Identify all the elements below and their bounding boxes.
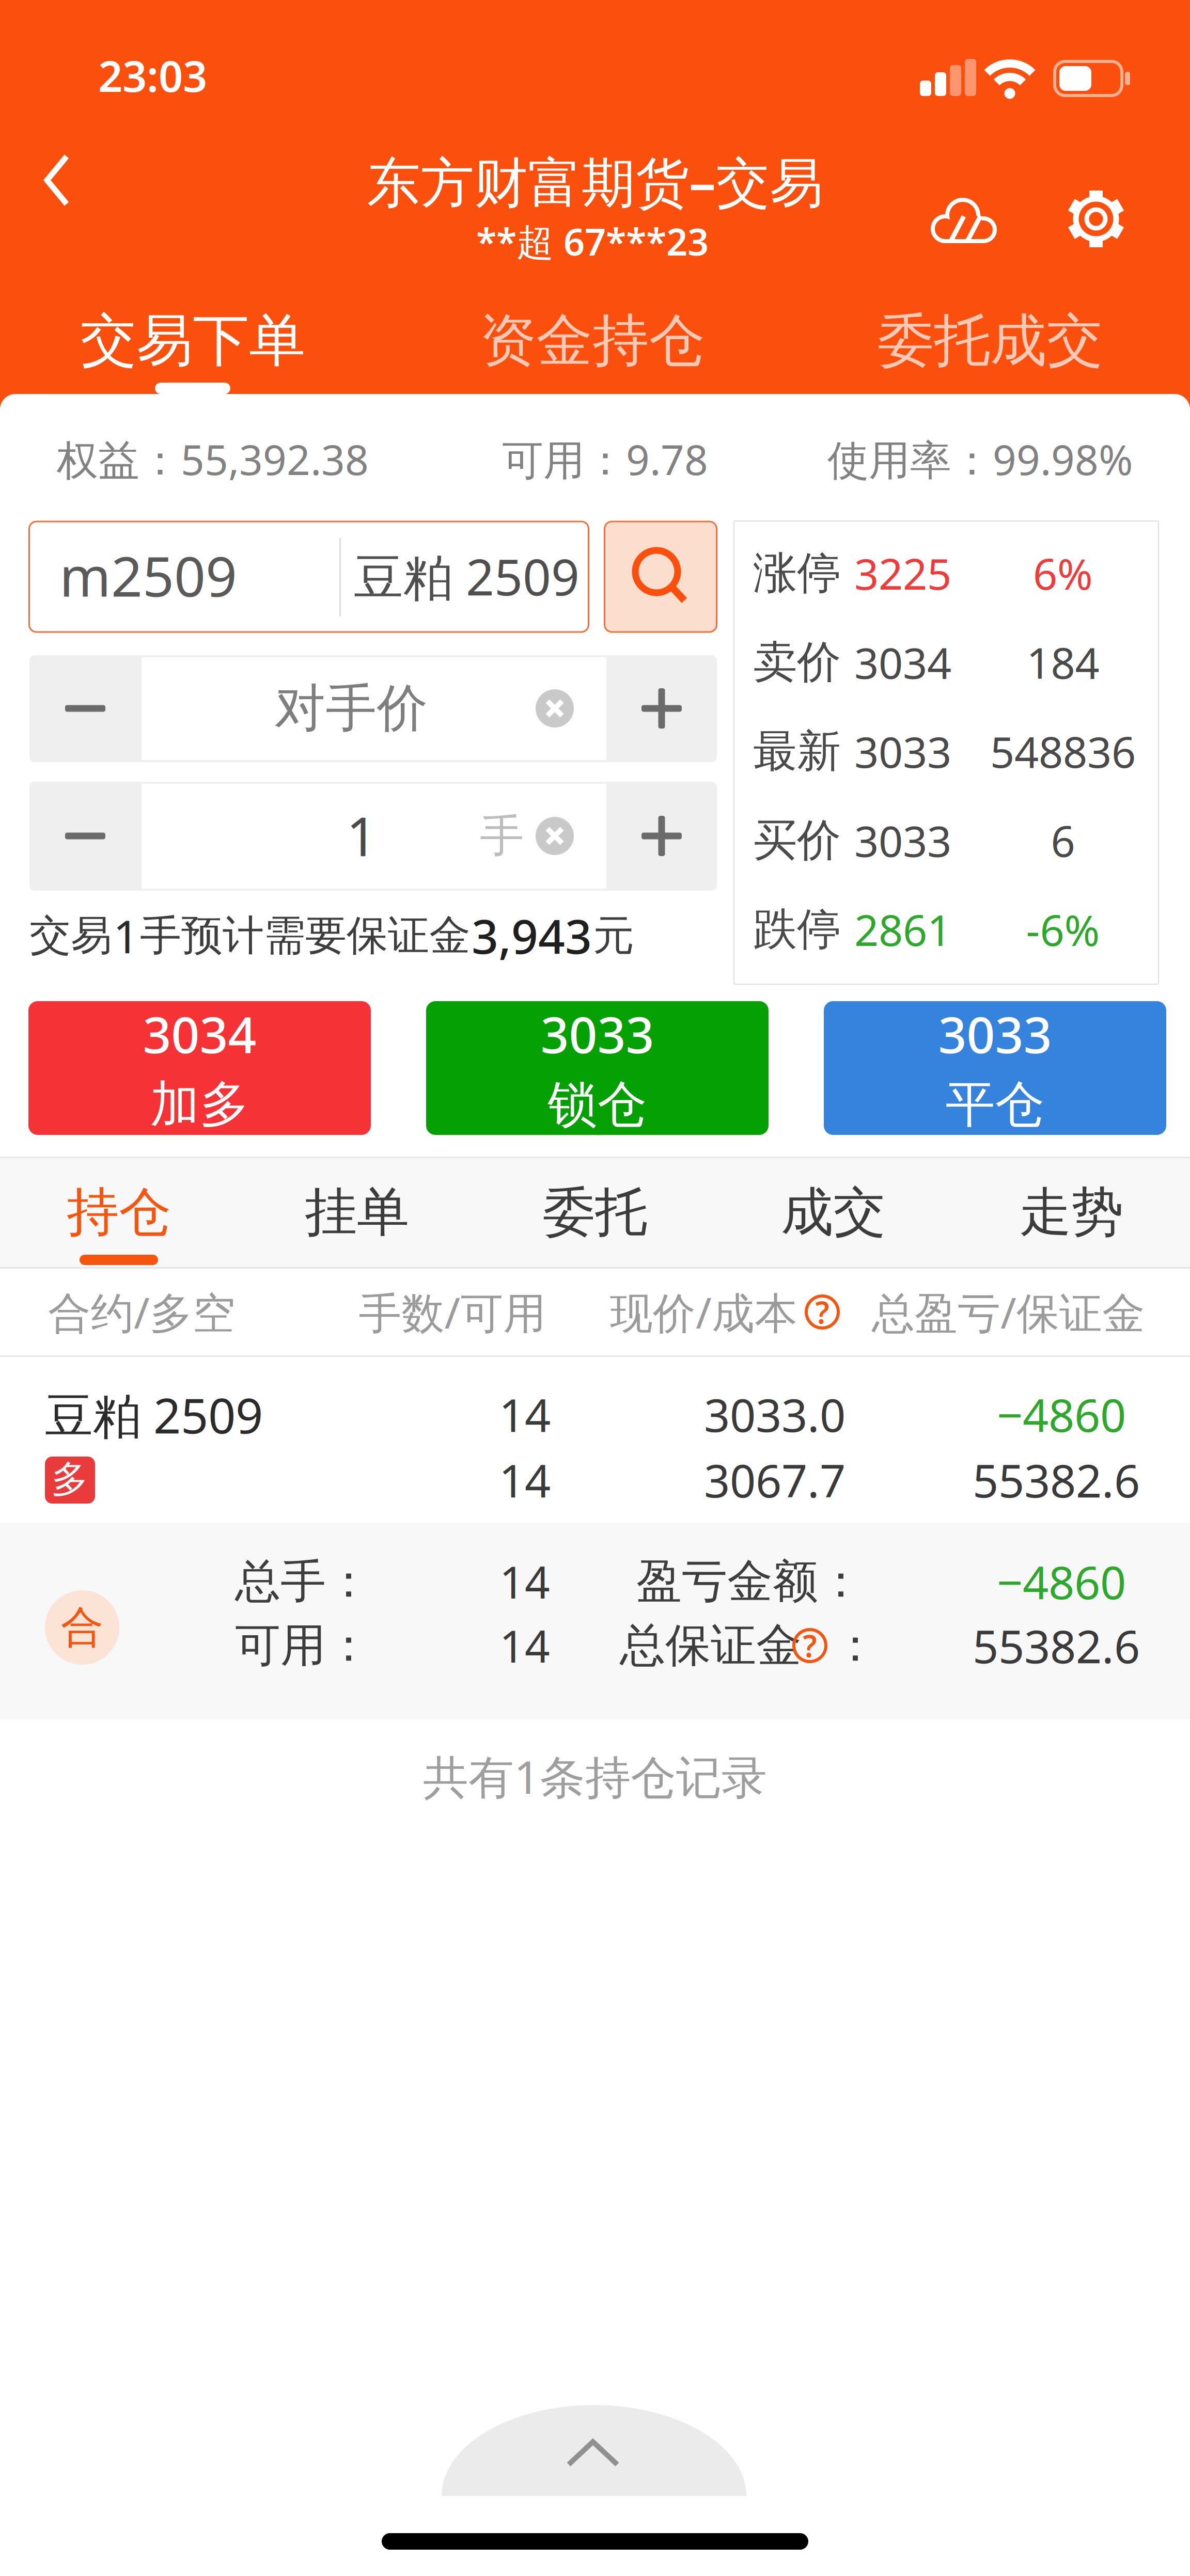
staticText: 平仓 [945, 1074, 1045, 1135]
staticText: 3033 [854, 723, 951, 780]
staticText: 3034 [854, 634, 951, 691]
button[interactable]: 增加价格 [606, 655, 717, 762]
staticText: 买价 [753, 813, 841, 867]
staticText: 1 [346, 800, 377, 871]
staticText: 使用率：99.98% [827, 432, 1133, 486]
staticText: 东方财富期货–交易 [367, 146, 823, 217]
staticText: **超 67***23 [476, 216, 709, 266]
button[interactable]: 展开 [0, 0, 1190, 2576]
staticText: ? [803, 1625, 817, 1666]
staticText: 手数/可用 [359, 1284, 546, 1340]
staticText: 3033 [541, 1001, 654, 1067]
staticText: ? [815, 1292, 829, 1332]
staticText: 6 [1051, 812, 1075, 869]
staticText: 23:03 [98, 47, 207, 104]
staticText: 548836 [990, 723, 1136, 780]
staticText: 总保证金 [620, 1618, 802, 1673]
staticText: 对手价 [275, 677, 428, 740]
staticText: 总盈亏/保证金 [872, 1284, 1145, 1340]
staticText: 总手： [235, 1554, 371, 1609]
staticText: 55382.6 [973, 1450, 1140, 1510]
staticText: 交易 [29, 910, 112, 961]
staticText: 最新 [753, 724, 841, 778]
staticText: 合 [61, 1601, 104, 1654]
button[interactable]: 总保证金说明 [794, 1630, 826, 1662]
button[interactable]: 交易下单 [27, 297, 358, 385]
staticText: 加多 [150, 1074, 249, 1135]
staticText: 卖价 [753, 635, 841, 689]
button[interactable]: 搜索 [605, 521, 717, 632]
button[interactable]: 现价成本说明 [806, 1296, 838, 1328]
staticText: −4860 [997, 1551, 1126, 1612]
staticText: −4860 [997, 1384, 1126, 1444]
staticText: 挂单 [305, 1180, 409, 1245]
staticText: 豆粕 2509 [45, 1383, 263, 1447]
button[interactable]: 减少手数 [29, 781, 141, 890]
staticText: 3033 [854, 812, 951, 869]
staticText: 手 [480, 809, 524, 863]
button[interactable]: 清除手数 [536, 817, 574, 855]
staticText: 元 [593, 910, 634, 961]
staticText: 走势 [1019, 1180, 1123, 1245]
staticText: 委托成交 [878, 306, 1103, 375]
button[interactable]: 设置 [1066, 189, 1126, 249]
staticText: 锁仓 [548, 1074, 647, 1135]
staticText: 跌停 [753, 902, 841, 956]
staticText: 共有1条持仓记录 [423, 1746, 767, 1806]
staticText: 可用：9.78 [502, 432, 708, 486]
staticText: 3,943 [472, 905, 592, 967]
staticText: 委托 [543, 1180, 647, 1245]
staticText: 55382.6 [973, 1615, 1140, 1676]
staticText: 涨停 [753, 546, 841, 600]
staticText: 成交 [781, 1180, 885, 1245]
staticText: 豆粕 2509 [354, 543, 580, 609]
staticText: 14 [499, 1616, 550, 1675]
button[interactable]: 云端 [930, 196, 999, 245]
staticText: 3033 [938, 1001, 1052, 1067]
staticText: 14 [499, 1450, 551, 1510]
staticText: 现价/成本 [610, 1284, 797, 1340]
button[interactable]: 清除价格 [536, 689, 574, 728]
staticText: 184 [1027, 634, 1099, 691]
button[interactable]: 持仓 [10, 1161, 227, 1264]
staticText: 交易下单 [80, 306, 305, 375]
button[interactable]: 3033 [824, 1001, 1166, 1135]
button[interactable]: 返回 [34, 149, 80, 211]
staticText: 持仓 [67, 1180, 171, 1245]
staticText: 1 [113, 905, 139, 966]
button[interactable]: 委托 [487, 1161, 703, 1264]
staticText: 3033.0 [704, 1384, 845, 1444]
staticText: 多 [51, 1456, 88, 1502]
staticText: 合约/多空 [48, 1284, 236, 1340]
button[interactable]: 减少价格 [29, 655, 141, 762]
staticText: 盈亏金额： [636, 1554, 864, 1609]
button[interactable]: 委托成交 [825, 297, 1155, 385]
staticText: 3034 [143, 1001, 256, 1067]
staticText: ： [833, 1618, 878, 1673]
button[interactable]: 3033 [426, 1001, 769, 1135]
staticText: 可用： [235, 1618, 371, 1673]
staticText: 6% [1033, 545, 1093, 601]
staticText: 3225 [854, 545, 951, 601]
staticText: 14 [499, 1552, 550, 1611]
staticText: 14 [499, 1384, 551, 1444]
button[interactable]: 成交 [725, 1161, 942, 1264]
staticText: m2509 [59, 539, 237, 612]
staticText: -6% [1026, 901, 1100, 958]
staticText: 资金持仓 [480, 306, 705, 375]
button[interactable]: 走势 [963, 1161, 1180, 1264]
staticText: 权益：55,392.38 [57, 432, 369, 486]
button[interactable]: 挂单 [248, 1161, 465, 1264]
button[interactable]: 3034 [28, 1001, 371, 1135]
button[interactable]: 增加手数 [606, 781, 717, 890]
button[interactable]: 资金持仓 [427, 297, 758, 385]
button[interactable]: 豆粕 2509 [0, 1357, 1190, 1523]
staticText: 手预计需要保证金 [140, 910, 471, 961]
button[interactable]: m2509 [29, 521, 589, 632]
staticText: 3067.7 [704, 1450, 845, 1510]
staticText: 2861 [854, 901, 951, 958]
